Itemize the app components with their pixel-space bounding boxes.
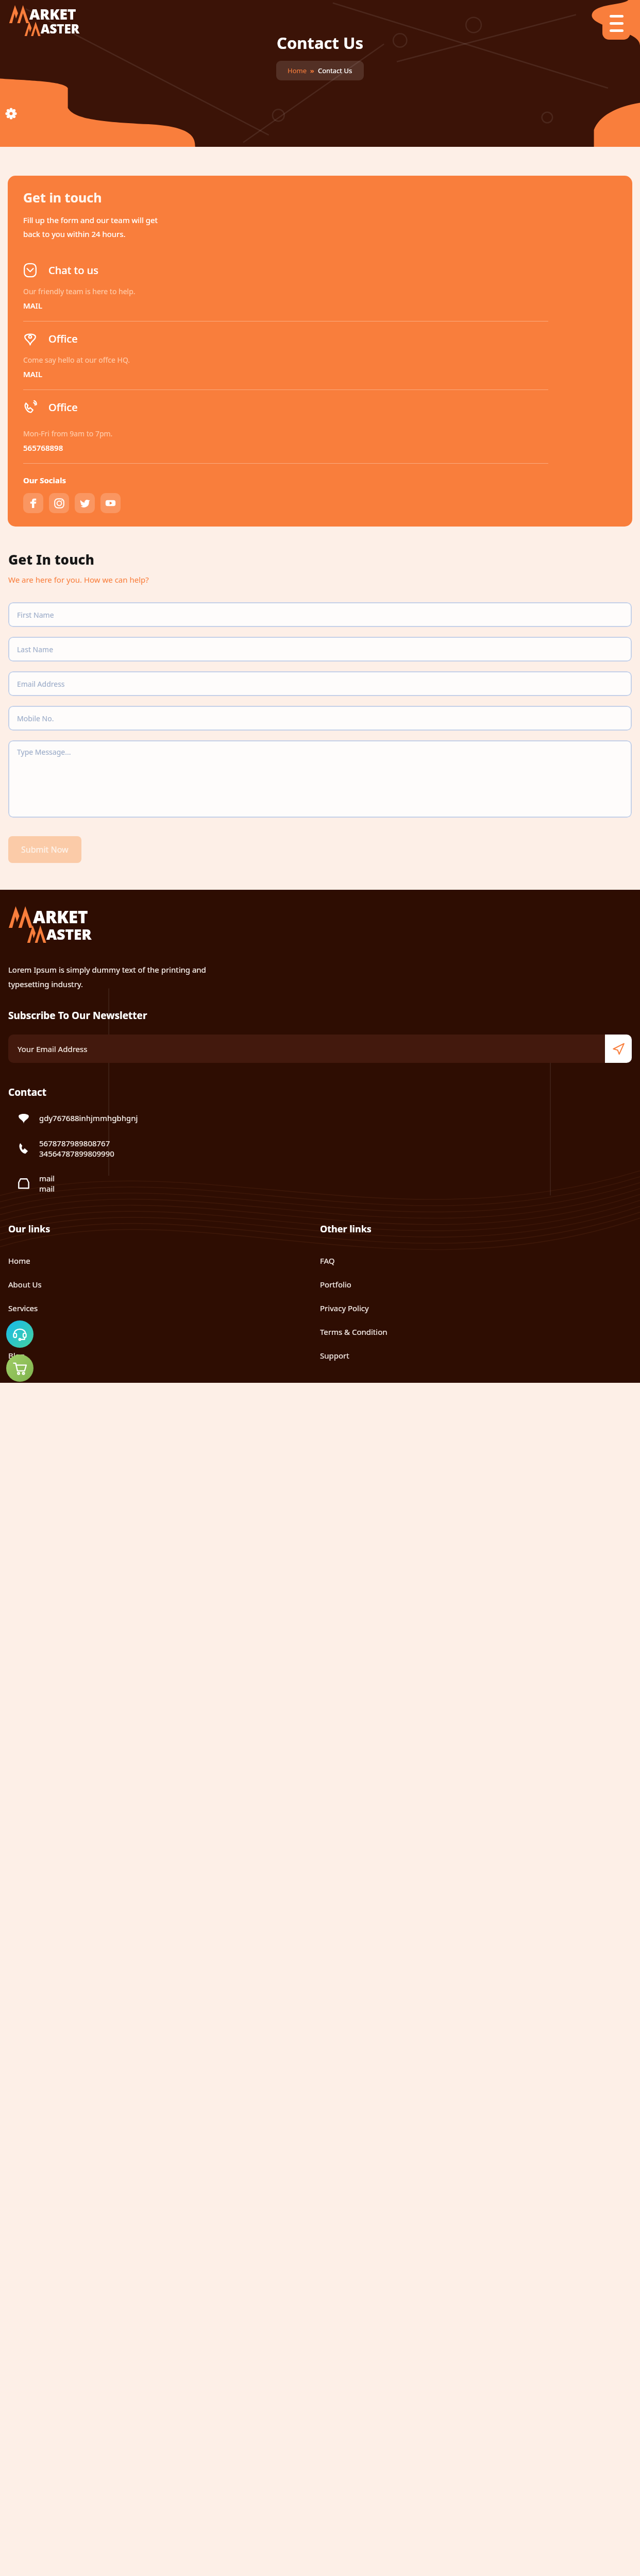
staticText: FAQ bbox=[320, 1256, 335, 1266]
button[interactable]: Terms & Condition bbox=[320, 1322, 632, 1342]
staticText: Portfolio bbox=[320, 1279, 351, 1290]
button[interactable]: Privacy Policy bbox=[320, 1298, 632, 1318]
staticText: Other links bbox=[320, 1223, 372, 1235]
button[interactable]: Mobile No. bbox=[8, 706, 632, 731]
button[interactable]: Team bbox=[8, 1322, 320, 1342]
button[interactable]: mail bbox=[8, 1173, 632, 1194]
staticText: Get In touch bbox=[8, 550, 95, 568]
button[interactable]: Support bbox=[320, 1346, 632, 1365]
staticText: ASTER bbox=[46, 924, 92, 944]
staticText: » bbox=[307, 66, 318, 75]
button[interactable]: Cart bbox=[6, 1354, 33, 1382]
staticText: 5678787989808767 bbox=[39, 1138, 110, 1148]
staticText: Your Email Address bbox=[18, 1044, 88, 1054]
staticText: mail bbox=[39, 1183, 55, 1194]
button[interactable]: Subscribe bbox=[605, 1035, 632, 1063]
button[interactable]: Home bbox=[288, 66, 307, 75]
staticText: Our Socials bbox=[23, 475, 66, 485]
button[interactable]: YouTube bbox=[100, 493, 121, 513]
button[interactable]: Home bbox=[8, 1251, 320, 1270]
staticText: Privacy Policy bbox=[320, 1303, 369, 1313]
staticText: Come say hello at our offce HQ. bbox=[23, 355, 130, 365]
staticText: Mobile No. bbox=[17, 714, 54, 723]
staticText: Fill up the form and our team will get b… bbox=[23, 215, 158, 240]
button[interactable]: Menu bbox=[602, 7, 630, 40]
button[interactable]: Settings bbox=[0, 99, 22, 127]
button[interactable]: Support bbox=[6, 1320, 33, 1348]
button[interactable]: Instagram bbox=[49, 493, 69, 513]
staticText: About Us bbox=[8, 1279, 42, 1290]
button[interactable]: First Name bbox=[8, 602, 632, 627]
staticText: 34564787899809990 bbox=[39, 1148, 114, 1159]
staticText: Contact bbox=[8, 1086, 47, 1099]
staticText: MAIL bbox=[23, 369, 42, 379]
button[interactable]: Your Email Address bbox=[8, 1035, 605, 1063]
staticText: Terms & Condition bbox=[320, 1327, 388, 1337]
staticText: First Name bbox=[17, 610, 54, 620]
staticText: mail bbox=[39, 1173, 55, 1183]
staticText: ARKET bbox=[33, 905, 88, 928]
button[interactable]: gdy767688inhjmmhgbhgnj bbox=[8, 1112, 632, 1124]
button[interactable]: FAQ bbox=[320, 1251, 632, 1270]
button[interactable]: Services bbox=[8, 1298, 320, 1318]
staticText: We are here for you. How we can help? bbox=[8, 574, 149, 585]
staticText: Services bbox=[8, 1303, 38, 1313]
staticText: Subscribe To Our Newsletter bbox=[8, 1009, 147, 1022]
staticText: Mon-Fri from 9am to 7pm. bbox=[23, 429, 113, 438]
staticText: Office bbox=[48, 332, 78, 346]
staticText: gdy767688inhjmmhgbhgnj bbox=[39, 1113, 138, 1123]
staticText: Contact Us bbox=[318, 66, 352, 75]
button[interactable]: Email Address bbox=[8, 671, 632, 696]
staticText: Blog bbox=[8, 1350, 25, 1361]
button[interactable]: Submit Now bbox=[8, 836, 81, 863]
button[interactable]: Blog bbox=[8, 1346, 320, 1365]
staticText: 565768898 bbox=[23, 443, 63, 453]
button[interactable]: Portfolio bbox=[320, 1275, 632, 1294]
staticText: Support bbox=[320, 1350, 349, 1361]
staticText: Get in touch bbox=[23, 189, 102, 206]
staticText: Type Message... bbox=[17, 747, 71, 757]
staticText: Contact Us bbox=[277, 32, 363, 54]
button[interactable]: 5678787989808767 bbox=[8, 1138, 632, 1159]
staticText: ASTER bbox=[41, 20, 79, 37]
button[interactable]: About Us bbox=[8, 1275, 320, 1294]
staticText: Our links bbox=[8, 1223, 50, 1235]
staticText: Our friendly team is here to help. bbox=[23, 286, 136, 296]
staticText: Email Address bbox=[17, 679, 65, 689]
staticText: Chat to us bbox=[48, 263, 98, 277]
staticText: Team bbox=[8, 1327, 28, 1337]
staticText: Home bbox=[8, 1256, 30, 1266]
staticText: MAIL bbox=[23, 300, 42, 311]
staticText: Submit Now bbox=[21, 844, 69, 855]
button[interactable]: Facebook bbox=[23, 493, 43, 513]
button[interactable]: Chat to us bbox=[23, 253, 620, 311]
button[interactable]: Twitter bbox=[75, 493, 95, 513]
staticText: ARKET bbox=[29, 4, 76, 24]
button[interactable]: Office bbox=[23, 390, 620, 453]
button[interactable]: Office bbox=[23, 321, 620, 379]
staticText: Last Name bbox=[17, 645, 54, 654]
staticText: Lorem Ipsum is simply dummy text of the … bbox=[8, 964, 206, 989]
button[interactable]: Type Message... bbox=[8, 740, 632, 818]
button[interactable]: Last Name bbox=[8, 637, 632, 662]
staticText: Office bbox=[48, 400, 78, 414]
